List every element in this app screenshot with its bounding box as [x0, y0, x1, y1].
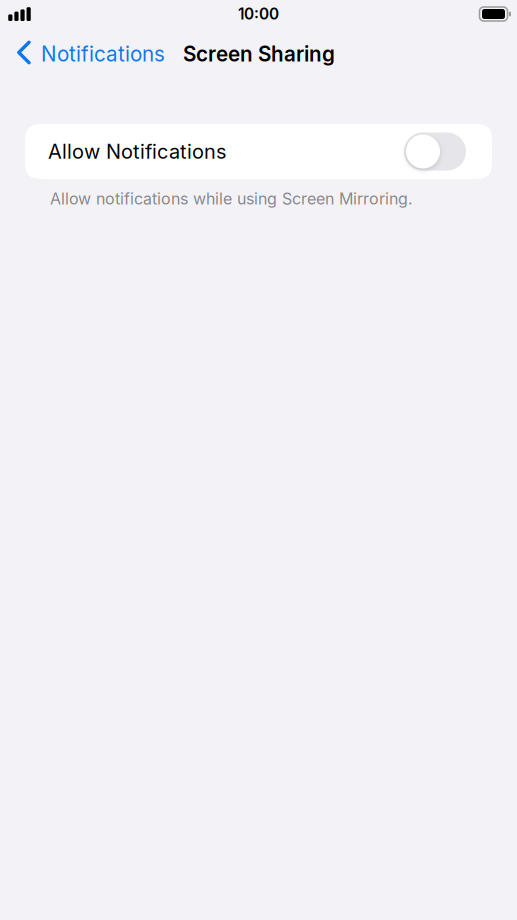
button[interactable]: Allow Notifications, off — [404, 132, 466, 170]
staticText: Allow Notifications — [48, 139, 226, 164]
staticText: Allow notifications while using Screen M… — [50, 189, 413, 208]
staticText: Notifications — [41, 41, 165, 66]
button[interactable]: Allow Notifications — [25, 124, 492, 179]
button[interactable]: Notifications — [0, 31, 175, 77]
staticText: 10:00 — [238, 5, 279, 23]
staticText: Screen Sharing — [183, 41, 335, 66]
